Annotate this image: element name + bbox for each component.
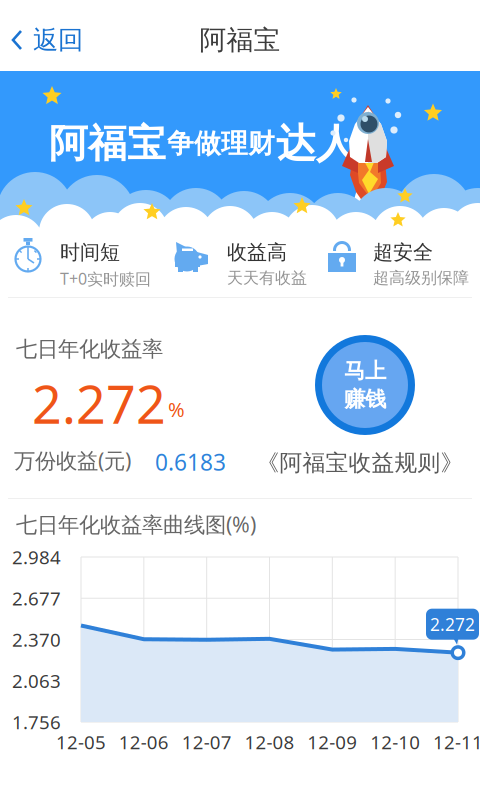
staticText: 12-11 [433,730,480,754]
staticText: 马上 [344,358,386,384]
staticText: 12-06 [119,730,169,754]
staticText: 2.370 [12,627,61,652]
staticText: 时间短 [60,240,120,265]
staticText: 12-05 [56,730,106,754]
staticText: 收益高 [227,240,287,265]
staticText: 12-08 [244,730,294,754]
staticText: 12-10 [370,730,420,754]
staticText: 赚钱 [344,386,386,412]
staticText: 2.063 [12,668,61,693]
staticText: 2.272 [32,369,166,438]
staticText: 超高级别保障 [373,268,469,288]
staticText: 超安全 [373,240,433,265]
staticText: % [168,396,185,423]
staticText: 七日年化收益率 [16,336,163,362]
staticText: 争做理财 [167,127,275,160]
staticText: 《阿福宝收益规则》 [256,449,463,477]
staticText: 12-07 [182,730,232,754]
staticText: 阿福宝 [199,24,280,56]
staticText: 2.984 [12,545,61,569]
staticText: 12-09 [307,730,357,754]
button[interactable]: 返回 [0,8,110,72]
button[interactable]: 马上 [314,334,416,436]
staticText: 达人 [276,119,356,168]
staticText: T+0实时赎回 [60,268,151,289]
staticText: 天天有收益 [227,268,307,288]
staticText: 七日年化收益率曲线图(%) [16,510,256,538]
staticText: 2.677 [12,586,61,611]
staticText: 阿福宝 [49,120,166,167]
staticText: 万份收益(元) [14,446,131,474]
button[interactable]: 《阿福宝收益规则》 [250,448,470,478]
staticText: 1.756 [12,710,61,734]
staticText: 返回 [33,24,83,55]
staticText: 2.272 [430,613,475,636]
staticText: 0.6183 [155,447,226,477]
